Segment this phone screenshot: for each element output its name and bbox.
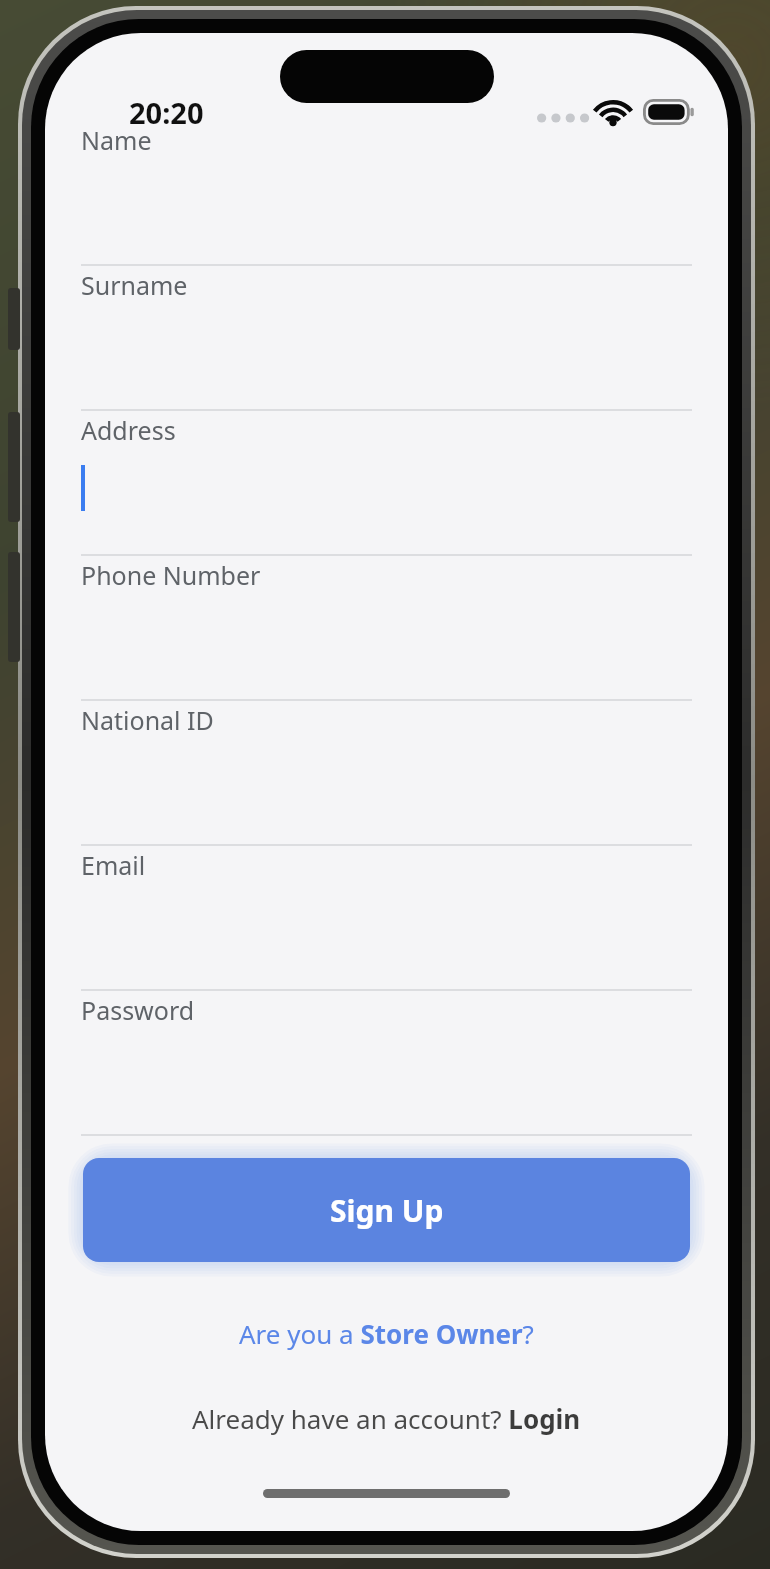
button[interactable]: Email xyxy=(81,846,692,991)
button[interactable]: Already have an account? Login xyxy=(45,1390,728,1446)
button[interactable]: Address xyxy=(81,411,692,556)
staticText: Already have an account? Login xyxy=(192,1401,581,1436)
button[interactable]: Password xyxy=(81,991,692,1136)
staticText: National ID xyxy=(81,703,214,737)
staticText: Address xyxy=(81,413,176,447)
button[interactable]: Are you a Store Owner? xyxy=(45,1305,728,1361)
button[interactable]: Phone Number xyxy=(81,556,692,701)
button[interactable]: Name xyxy=(81,121,692,266)
button[interactable]: Surname xyxy=(81,266,692,411)
button[interactable]: Sign Up xyxy=(83,1158,690,1262)
staticText: Name xyxy=(81,123,152,157)
staticText: Are you a Store Owner? xyxy=(239,1316,534,1351)
staticText: Email xyxy=(81,848,146,882)
staticText: 20:20 xyxy=(129,93,204,132)
staticText: Sign Up xyxy=(330,1190,444,1231)
staticText: Surname xyxy=(81,268,188,302)
staticText: Password xyxy=(81,993,195,1027)
button[interactable]: National ID xyxy=(81,701,692,846)
staticText: Phone Number xyxy=(81,558,261,592)
